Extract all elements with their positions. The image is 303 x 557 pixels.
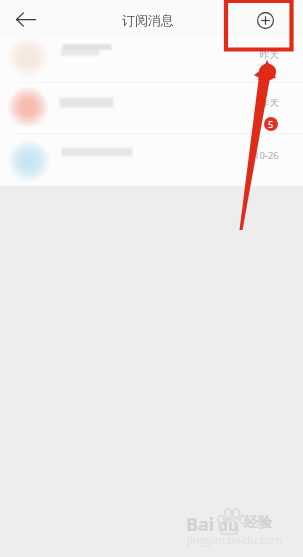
- button[interactable]: 10-26: [0, 137, 303, 187]
- button[interactable]: Add subscription: [246, 2, 284, 39]
- button[interactable]: 昨天: [0, 37, 303, 87]
- staticText: du: [218, 514, 239, 536]
- staticText: 昨天: [260, 97, 279, 109]
- staticText: 10-26: [254, 149, 279, 162]
- staticText: Bai: [186, 512, 215, 537]
- staticText: 订阅消息: [122, 12, 174, 28]
- staticText: jingyan.baidu.com: [187, 532, 283, 547]
- staticText: 5: [268, 118, 274, 130]
- button[interactable]: 昨天: [0, 87, 303, 137]
- button[interactable]: Back: [3, 1, 48, 38]
- staticText: 经验: [244, 514, 272, 532]
- staticText: 昨天: [260, 49, 279, 61]
